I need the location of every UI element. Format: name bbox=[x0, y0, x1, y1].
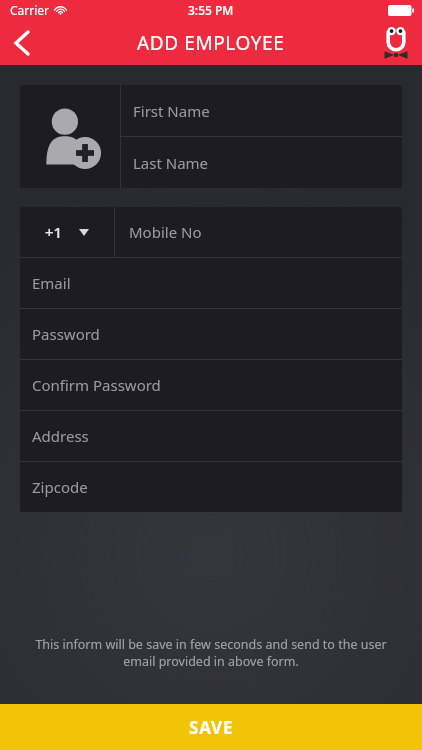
staticText: SAVE bbox=[189, 716, 234, 739]
button[interactable]: Password bbox=[20, 309, 402, 359]
button[interactable]: App logo bbox=[374, 21, 418, 65]
staticText: Last Name bbox=[133, 153, 209, 173]
staticText: Carrier bbox=[10, 2, 50, 18]
button[interactable]: Back bbox=[0, 21, 44, 65]
staticText: Address bbox=[32, 426, 89, 446]
button[interactable]: Last Name bbox=[121, 137, 402, 188]
staticText: Mobile No bbox=[129, 222, 202, 242]
staticText: Confirm Password bbox=[32, 375, 161, 395]
staticText: Email bbox=[32, 273, 71, 293]
button[interactable]: Email bbox=[20, 258, 402, 308]
staticText: This inform will be save in few seconds … bbox=[32, 636, 390, 670]
staticText: Password bbox=[32, 324, 100, 344]
button[interactable]: Mobile No bbox=[115, 207, 402, 257]
staticText: First Name bbox=[133, 101, 210, 121]
button[interactable]: Address bbox=[20, 411, 402, 461]
button[interactable]: Zipcode bbox=[20, 462, 402, 512]
button[interactable]: First Name bbox=[121, 85, 402, 136]
button[interactable]: SAVE bbox=[0, 704, 422, 750]
staticText: ADD EMPLOYEE bbox=[137, 30, 285, 56]
button[interactable]: Confirm Password bbox=[20, 360, 402, 410]
button[interactable]: +1 bbox=[20, 207, 114, 257]
staticText: Zipcode bbox=[32, 477, 88, 497]
staticText: 3:55 PM bbox=[188, 2, 234, 18]
staticText: +1 bbox=[45, 222, 63, 242]
button[interactable]: Add photo bbox=[20, 85, 120, 188]
